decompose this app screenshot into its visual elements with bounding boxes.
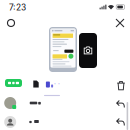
button[interactable]: Account <box>4 16 18 30</box>
staticText: 7:23 <box>9 2 26 12</box>
button[interactable]: Open in app <box>46 81 53 87</box>
button[interactable]: Screenshot attachment <box>49 27 77 72</box>
button[interactable]: Photo attachment <box>79 33 97 68</box>
button[interactable]: Reply <box>113 97 128 111</box>
staticText: · · <box>54 80 60 88</box>
button[interactable]: Share to Messages <box>5 79 22 87</box>
button[interactable]: Delete <box>114 78 128 93</box>
button[interactable]: Close <box>112 15 128 31</box>
button[interactable]: Save to Files <box>33 80 39 88</box>
button[interactable]: Reply <box>113 115 128 129</box>
